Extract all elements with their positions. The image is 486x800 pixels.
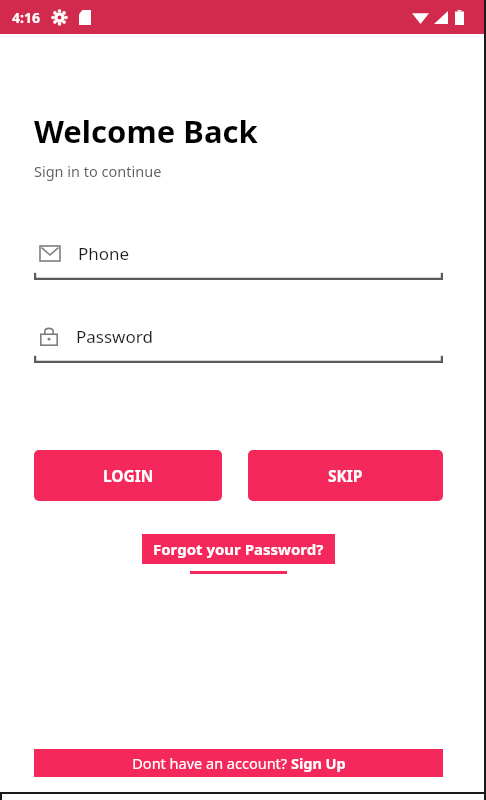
staticText: Forgot your Password? xyxy=(153,539,324,559)
staticText: 4:16 xyxy=(12,8,40,27)
button[interactable]: Phone xyxy=(34,242,443,280)
staticText: SKIP xyxy=(328,465,363,486)
staticText: Dont have an account? Sign Up xyxy=(132,753,346,773)
staticText: Sign in to continue xyxy=(34,161,162,181)
button[interactable]: Dont have an account? Sign Up xyxy=(34,749,443,777)
button[interactable]: LOGIN xyxy=(34,450,222,501)
button[interactable]: SKIP xyxy=(248,450,443,501)
staticText: Welcome Back xyxy=(34,110,258,152)
staticText: LOGIN xyxy=(103,465,154,486)
staticText: Password xyxy=(76,325,153,348)
button[interactable]: Forgot your Password? xyxy=(142,534,335,564)
staticText: Phone xyxy=(78,242,130,265)
button[interactable]: Password xyxy=(34,325,443,363)
